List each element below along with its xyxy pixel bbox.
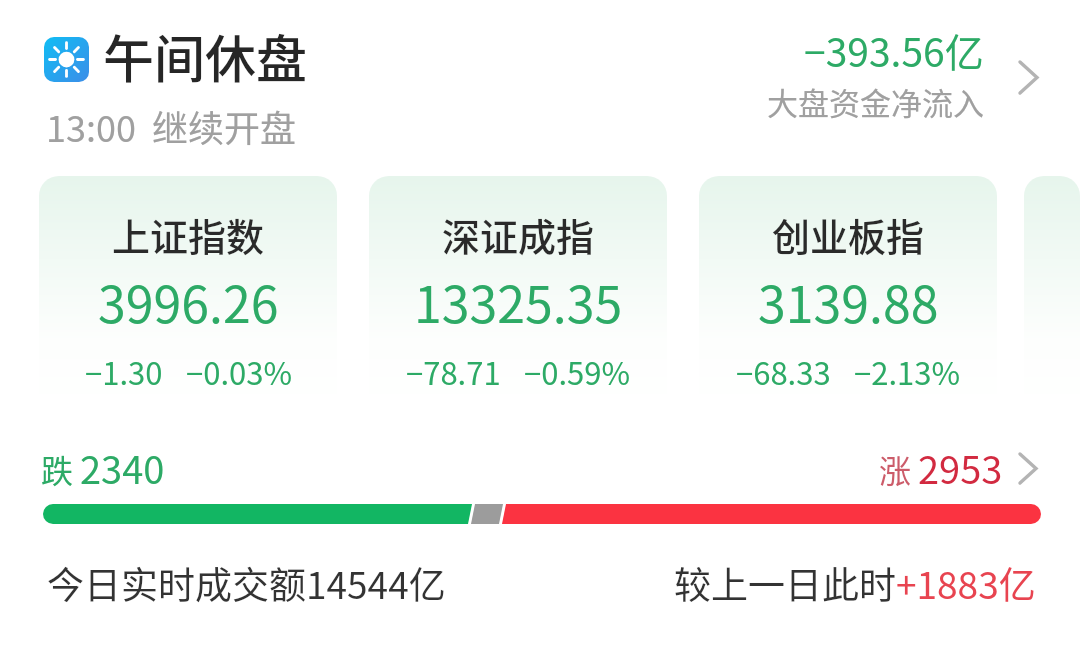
staticText: −393.56亿 — [804, 22, 984, 78]
staticText: 13325.35 — [414, 265, 623, 337]
staticText: 2340 — [80, 440, 165, 495]
button[interactable]: 较上一日此时 — [674, 556, 1036, 610]
button[interactable]: 上证指数 — [39, 176, 337, 412]
button[interactable]: 今日实时成交额14544亿 — [47, 556, 446, 610]
staticText: 涨 — [879, 446, 912, 492]
staticText: −0.59% — [524, 349, 630, 394]
staticText: 深证成指 — [442, 207, 595, 262]
staticText: +1883亿 — [896, 556, 1036, 610]
button[interactable]: 深证成指 — [369, 176, 667, 412]
staticText: −68.33 — [736, 349, 831, 394]
staticText: 大盘资金净流入 — [767, 79, 984, 124]
staticText: 午间休盘 — [103, 19, 308, 93]
staticText: 较上一日此时 — [674, 556, 896, 610]
button[interactable]: −393.56亿 — [767, 22, 1045, 124]
staticText: −1.30 — [85, 349, 163, 394]
button[interactable]: 创业板指 — [699, 176, 997, 412]
staticText: 2953 — [918, 440, 1003, 495]
staticText: 3996.26 — [98, 265, 279, 337]
staticText: −0.03% — [186, 349, 292, 394]
other: 查看大盘资金净流入 — [1011, 60, 1045, 94]
staticText: −2.13% — [854, 349, 960, 394]
button[interactable] — [1024, 176, 1080, 412]
other: 查看涨跌家数 — [1013, 453, 1043, 483]
button[interactable]: 午间休盘 — [44, 21, 308, 95]
staticText: 创业板指 — [772, 207, 925, 262]
staticText: 13:00 继续开盘 — [46, 100, 297, 152]
other: 午间休盘 — [44, 37, 89, 82]
button[interactable]: 涨 — [879, 440, 1043, 495]
staticText: 3139.88 — [758, 265, 939, 337]
staticText: −78.71 — [406, 349, 501, 394]
staticText: 跌 — [41, 446, 74, 492]
staticText: 上证指数 — [112, 207, 265, 262]
button[interactable]: 跌 — [41, 440, 165, 495]
